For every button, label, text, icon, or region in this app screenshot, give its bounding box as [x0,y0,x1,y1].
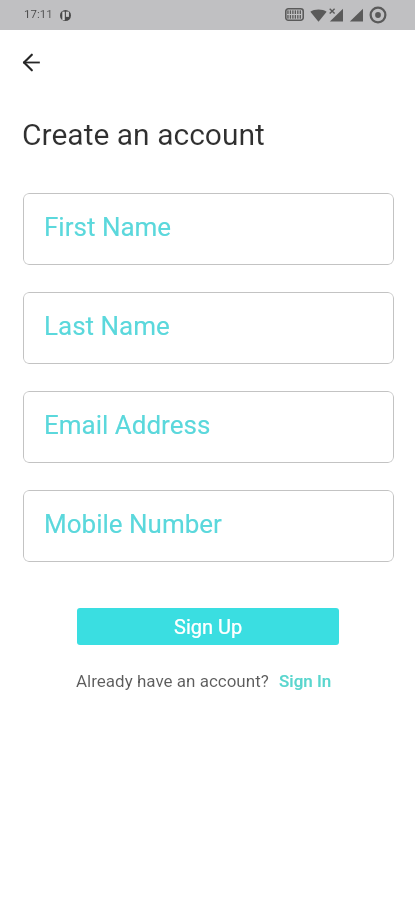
staticText: Create an account [22,117,265,152]
button[interactable]: Email Address [23,391,394,463]
staticText: Sign In [279,671,332,691]
staticText: Last Name [44,311,170,341]
staticText: First Name [44,212,172,242]
button[interactable]: Sign In [279,671,332,691]
button[interactable]: Back [7,38,55,86]
staticText: Already have an account? [76,671,269,691]
staticText: 17:11 [24,7,53,20]
button[interactable]: Sign Up [77,608,339,645]
staticText: Email Address [44,410,211,440]
button[interactable]: Mobile Number [23,490,394,562]
staticText: Sign Up [174,615,243,638]
button[interactable]: Last Name [23,292,394,364]
button[interactable]: First Name [23,193,394,265]
staticText: Mobile Number [44,509,222,539]
